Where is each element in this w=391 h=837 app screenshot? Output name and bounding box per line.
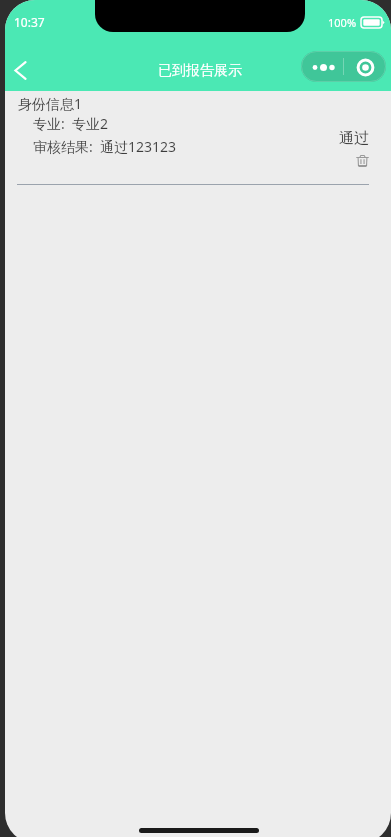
staticText: 审核结果: 通过123123 [33,137,177,156]
staticText: 100% [328,15,357,30]
staticText: 通过 [339,129,369,148]
button[interactable]: More options [301,51,386,82]
staticText: 已到报告展示 [158,62,242,80]
staticText: 10:37 [14,14,45,30]
button[interactable]: Delete [355,153,369,167]
button[interactable]: Back [5,50,40,90]
staticText: 身份信息1 [18,94,83,113]
staticText: 专业: 专业2 [33,114,109,133]
